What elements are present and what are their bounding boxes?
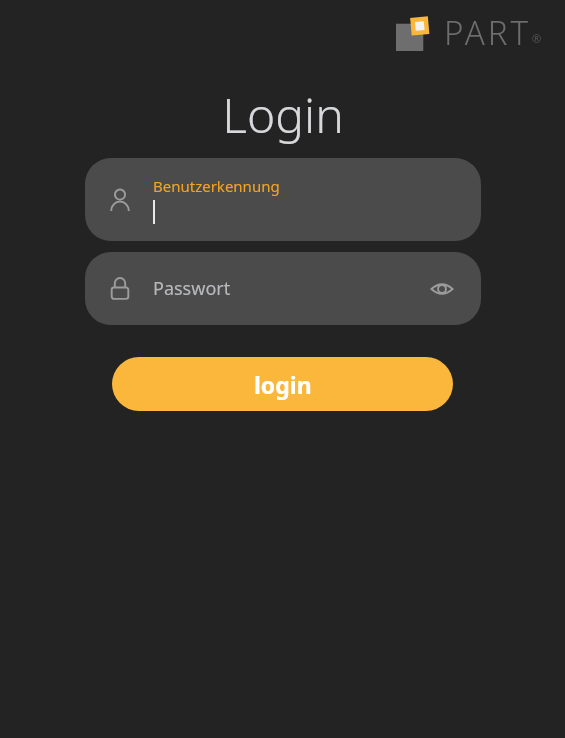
staticText: PART: [444, 10, 532, 55]
staticText: login: [254, 369, 312, 400]
button[interactable]: login: [112, 357, 453, 411]
staticText: ®: [532, 31, 542, 46]
button[interactable]: Show password: [425, 272, 459, 306]
staticText: Passwort: [153, 276, 425, 301]
button[interactable]: Passwort: [85, 252, 481, 325]
staticText: Benutzerkennung: [153, 176, 280, 196]
staticText: Login: [222, 82, 344, 147]
button[interactable]: Benutzerkennung: [85, 158, 481, 241]
